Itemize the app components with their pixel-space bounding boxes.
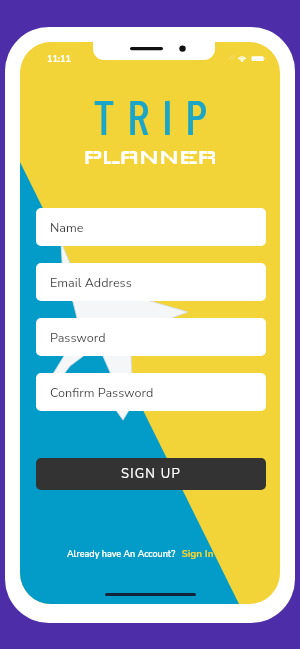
staticText: Name	[50, 219, 84, 236]
staticText: PLANNER	[83, 146, 217, 169]
staticText: Already have An Account?	[67, 548, 176, 560]
staticText: 11:11	[47, 53, 71, 65]
button[interactable]: Password	[36, 318, 266, 356]
button[interactable]: SIGN UP	[36, 458, 266, 490]
staticText: Confirm Password	[50, 384, 154, 401]
other: Status icons	[226, 50, 280, 64]
staticText: TRIP	[93, 86, 220, 145]
button[interactable]: Sign In	[176, 547, 214, 561]
staticText: Sign In	[176, 547, 214, 561]
button[interactable]: Confirm Password	[36, 373, 266, 411]
staticText: Password	[50, 329, 106, 346]
staticText: Email Address	[50, 274, 132, 291]
button[interactable]: Name	[36, 208, 266, 246]
button[interactable]: Email Address	[36, 263, 266, 301]
staticText: SIGN UP	[121, 465, 181, 483]
